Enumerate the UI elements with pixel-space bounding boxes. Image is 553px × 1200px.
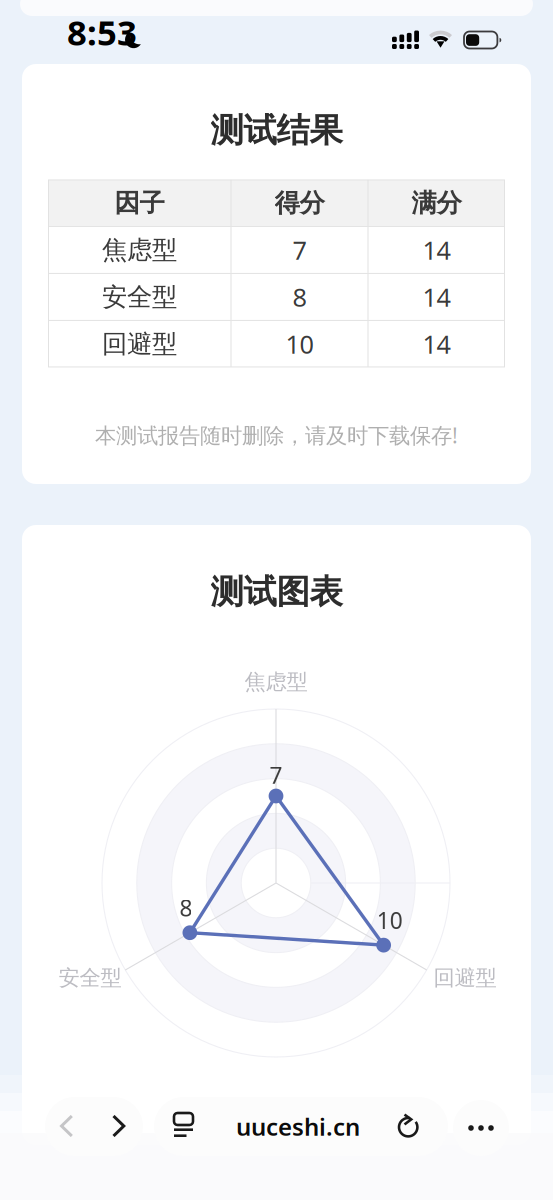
staticText: 回避型 bbox=[102, 328, 177, 359]
staticText: 焦虑型 bbox=[244, 669, 307, 695]
staticText: 测试结果 bbox=[210, 110, 342, 151]
staticText: 10 bbox=[285, 327, 313, 361]
staticText: 8:53 bbox=[67, 9, 137, 55]
staticText: 14 bbox=[422, 233, 450, 267]
staticText: 满分 bbox=[411, 187, 461, 218]
button[interactable]: Back and forward bbox=[45, 1097, 143, 1156]
staticText: 安全型 bbox=[102, 281, 177, 312]
staticText: 14 bbox=[422, 327, 450, 361]
staticText: 测试图表 bbox=[210, 571, 342, 612]
staticText: 10 bbox=[377, 905, 403, 935]
staticText: 本测试报告随时删除，请及时下载保存! bbox=[95, 421, 458, 449]
staticText: 7 bbox=[292, 233, 306, 267]
staticText: 焦虑型 bbox=[102, 234, 177, 265]
staticText: 8 bbox=[292, 280, 306, 314]
staticText: uuceshi.cn bbox=[236, 1111, 360, 1142]
staticText: 7 bbox=[269, 760, 282, 790]
staticText: 8 bbox=[179, 893, 192, 923]
staticText: 得分 bbox=[274, 187, 324, 218]
staticText: 14 bbox=[422, 280, 450, 314]
staticText: 回避型 bbox=[433, 965, 496, 991]
staticText: 安全型 bbox=[58, 965, 121, 991]
button[interactable]: Address uuceshi.cn bbox=[154, 1097, 448, 1156]
staticText: 因子 bbox=[114, 187, 164, 218]
button[interactable]: More bbox=[453, 1098, 509, 1154]
